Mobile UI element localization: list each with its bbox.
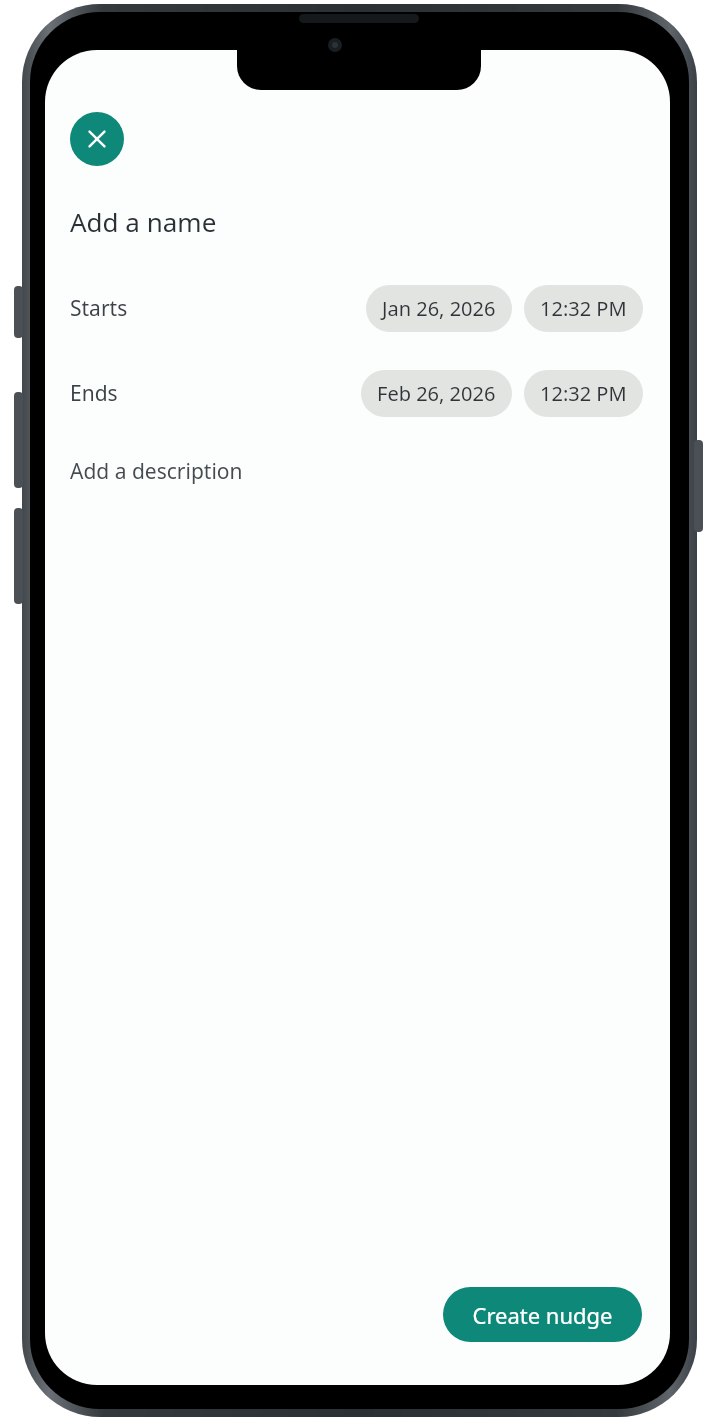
button[interactable]: Feb 26, 2026 xyxy=(361,370,512,417)
button[interactable]: Add a description xyxy=(45,453,670,490)
staticText: Jan 26, 2026 xyxy=(382,295,496,322)
staticText: Create nudge xyxy=(472,1300,613,1330)
button[interactable]: Jan 26, 2026 xyxy=(366,285,512,332)
staticText: 12:32 PM xyxy=(540,295,627,322)
button[interactable]: Create nudge xyxy=(443,1287,642,1342)
staticText: 12:32 PM xyxy=(540,380,627,407)
staticText: Add a name xyxy=(70,204,217,239)
staticText: Ends xyxy=(70,379,118,408)
button[interactable]: 12:32 PM xyxy=(524,370,643,417)
button[interactable]: Close xyxy=(70,112,124,166)
staticText: Add a description xyxy=(70,457,243,486)
staticText: Feb 26, 2026 xyxy=(377,380,496,407)
button[interactable]: Add a name xyxy=(45,200,670,243)
button[interactable]: 12:32 PM xyxy=(524,285,643,332)
staticText: Starts xyxy=(70,294,128,323)
